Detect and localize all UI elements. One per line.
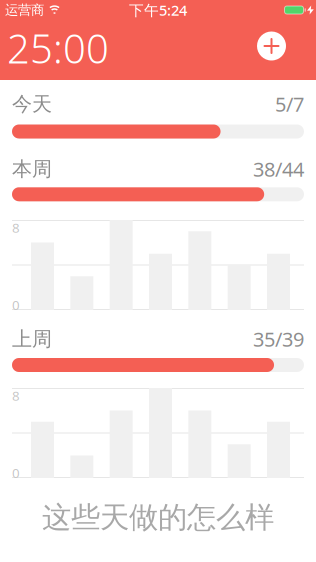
staticText: 0 (12, 464, 20, 482)
staticText: 今天 (12, 92, 52, 116)
staticText: 38/44 (253, 156, 304, 182)
staticText: 运营商 (5, 2, 44, 18)
staticText: 这些天做的怎么样 (42, 499, 274, 535)
staticText: 35/39 (253, 326, 304, 352)
staticText: 8 (12, 219, 20, 236)
button[interactable]: Add (257, 31, 286, 60)
staticText: 5/7 (275, 91, 304, 117)
staticText: 本周 (12, 157, 52, 181)
staticText: 上周 (12, 327, 52, 351)
staticText: 0 (12, 296, 20, 314)
staticText: 下午5:24 (129, 0, 187, 20)
staticText: 8 (12, 387, 20, 404)
staticText: 25:00 (7, 21, 109, 74)
